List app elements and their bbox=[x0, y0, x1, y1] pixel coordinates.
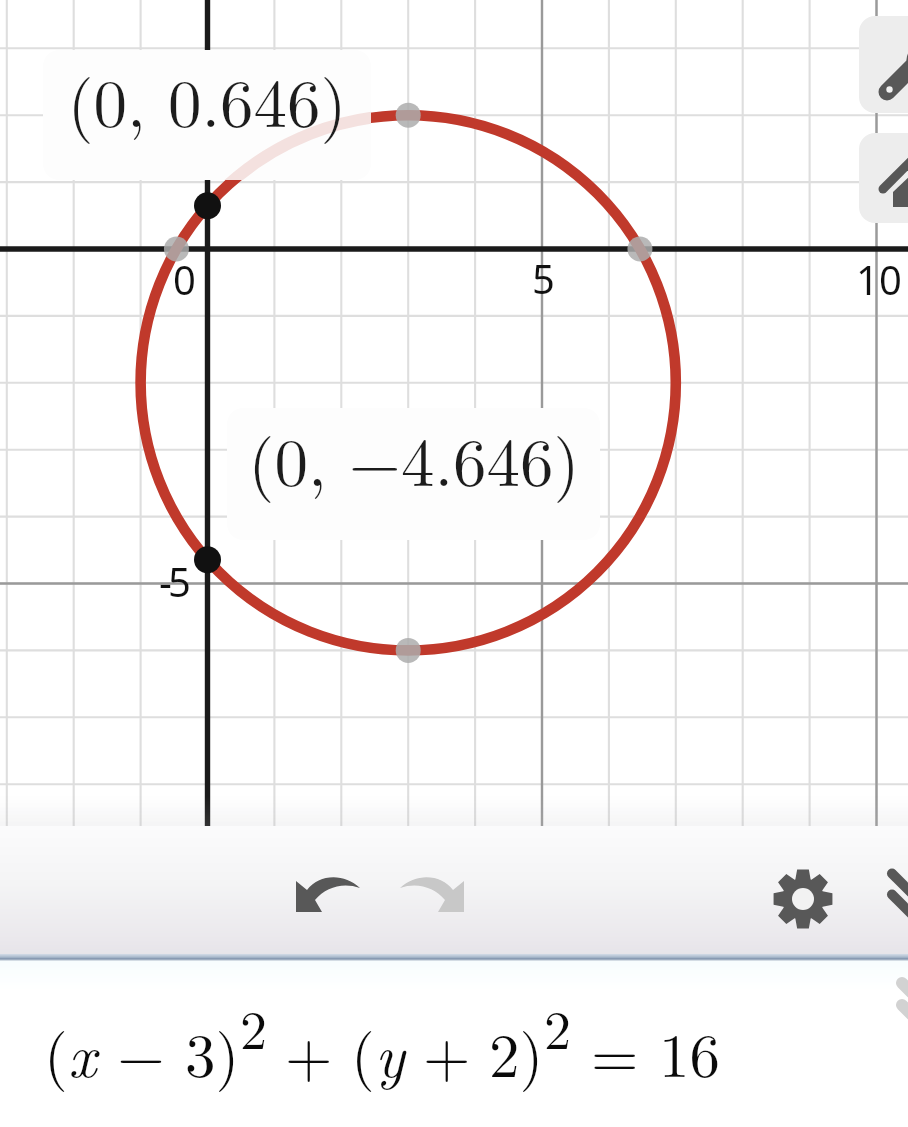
staticText: 2) bbox=[489, 1008, 544, 1094]
button[interactable]: Tools bbox=[859, 16, 908, 113]
button[interactable]: ( bbox=[0, 961, 908, 1127]
staticText: 10 bbox=[856, 252, 902, 306]
staticText: + bbox=[423, 1008, 471, 1094]
button[interactable]: Undo bbox=[279, 848, 375, 944]
staticText: (0, −4.646) bbox=[248, 410, 580, 505]
staticText: x bbox=[68, 1008, 97, 1094]
staticText: (0, 0.646) bbox=[67, 51, 347, 146]
button[interactable]: Hide keyboard bbox=[872, 864, 908, 948]
staticText: 2 bbox=[240, 988, 267, 1065]
staticText: 0 bbox=[173, 252, 196, 306]
button[interactable]: (0, −4.646) bbox=[227, 408, 600, 540]
button[interactable]: Redo bbox=[385, 848, 481, 944]
staticText: ( bbox=[351, 1008, 375, 1094]
staticText: y bbox=[375, 1008, 405, 1094]
staticText: 5 bbox=[532, 251, 555, 305]
button[interactable]: Expand bbox=[882, 974, 908, 1058]
staticText: + bbox=[285, 1008, 333, 1094]
staticText: − 3) bbox=[97, 1008, 240, 1094]
staticText: 16 bbox=[659, 1008, 721, 1094]
button[interactable]: Home bbox=[859, 133, 908, 223]
button[interactable]: Settings bbox=[761, 857, 845, 941]
button[interactable]: (0, 0.646) bbox=[43, 50, 371, 180]
staticText: -5 bbox=[159, 554, 187, 608]
staticText: 2 bbox=[544, 988, 571, 1065]
staticText: ( bbox=[44, 1008, 68, 1094]
staticText: = bbox=[591, 1008, 639, 1094]
